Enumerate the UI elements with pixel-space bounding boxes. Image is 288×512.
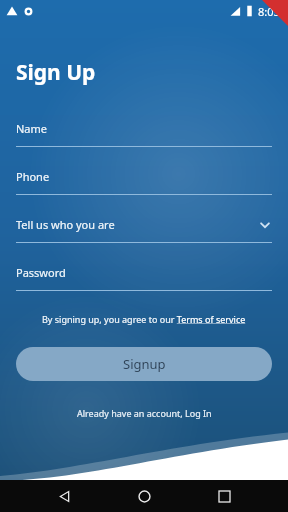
staticText: Tell us who you are	[16, 217, 115, 232]
staticText: Phone	[16, 169, 50, 184]
button[interactable]: Name	[16, 121, 272, 147]
button[interactable]: By signing up, you agree to our Terms of…	[16, 313, 272, 325]
staticText: By signing up, you agree to our Terms of…	[42, 313, 246, 325]
other: Expand options	[258, 218, 272, 232]
staticText: Already have an account, Log In	[77, 407, 212, 419]
staticText: Password	[16, 265, 66, 280]
staticText: Name	[16, 121, 48, 136]
button[interactable]: Tell us who you are	[16, 217, 272, 243]
staticText: Signup	[123, 355, 166, 373]
button[interactable]: Already have an account, Log In	[16, 407, 272, 419]
button[interactable]: Password	[16, 265, 272, 291]
button[interactable]: Recent apps	[208, 480, 240, 512]
button[interactable]: Signup	[16, 347, 272, 381]
button[interactable]: Back	[48, 480, 80, 512]
staticText: Sign Up	[16, 58, 96, 87]
button[interactable]: Phone	[16, 169, 272, 195]
staticText: 8:05	[258, 4, 280, 19]
button[interactable]: Home	[128, 480, 160, 512]
